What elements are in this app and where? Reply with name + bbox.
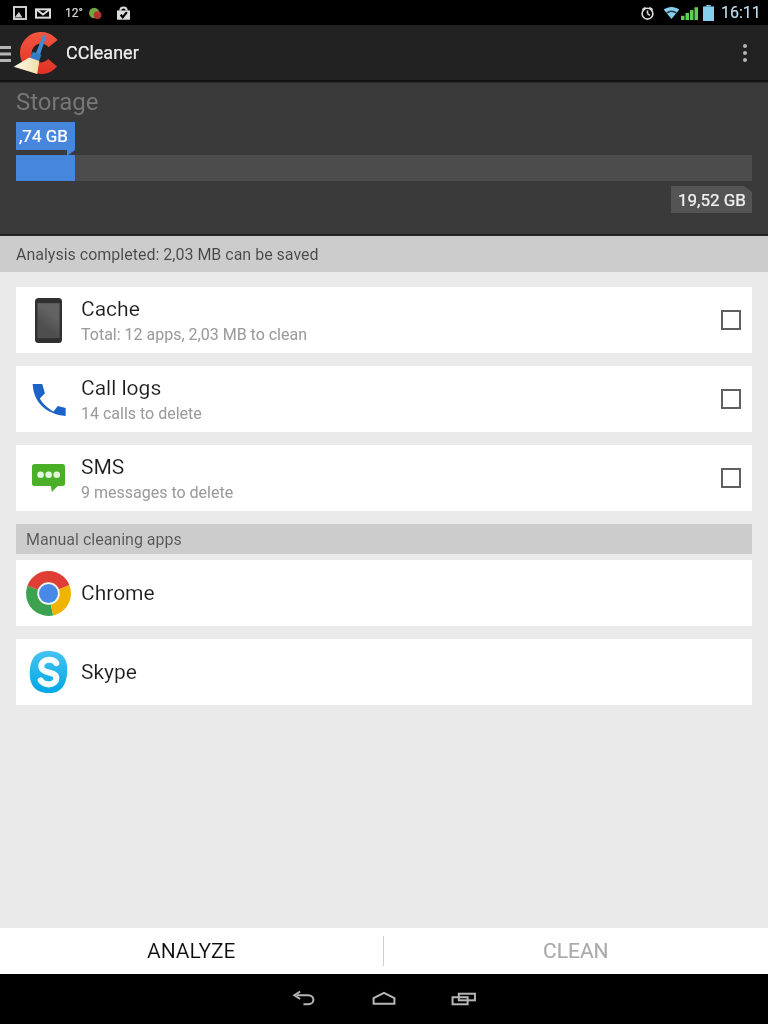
button[interactable]: Home <box>344 974 424 1024</box>
staticText: SMS <box>81 455 125 480</box>
staticText: Analysis completed: 2,03 MB can be saved <box>16 245 319 264</box>
button[interactable]: CLEAN <box>384 928 768 974</box>
button[interactable]: Chrome <box>16 560 752 626</box>
button[interactable]: Open navigation drawer <box>0 25 14 80</box>
staticText: 9 messages to delete <box>81 483 234 502</box>
button[interactable]: Skype <box>16 639 752 705</box>
staticText: ,74 GB <box>19 126 68 146</box>
button[interactable]: Call logs <box>16 366 752 432</box>
button[interactable]: Recent apps <box>424 974 504 1024</box>
button[interactable]: Select SMS <box>710 445 752 511</box>
staticText: Manual cleaning apps <box>26 530 182 549</box>
button[interactable]: More options <box>722 25 768 80</box>
button[interactable]: Select Call logs <box>710 366 752 432</box>
button[interactable]: Select Cache <box>710 287 752 353</box>
button[interactable]: SMS <box>16 445 752 511</box>
staticText: ANALYZE <box>147 939 236 964</box>
button[interactable]: Cache <box>16 287 752 353</box>
staticText: 12° <box>65 6 83 20</box>
staticText: Chrome <box>81 581 155 606</box>
staticText: 14 calls to delete <box>81 404 202 423</box>
staticText: 19,52 GB <box>678 190 746 210</box>
staticText: Cache <box>81 297 140 322</box>
staticText: Skype <box>81 660 137 685</box>
button[interactable]: Back <box>264 974 344 1024</box>
staticText: Storage <box>16 88 99 116</box>
staticText: Total: 12 apps, 2,03 MB to clean <box>81 325 308 344</box>
staticText: CCleaner <box>66 42 139 63</box>
staticText: 16:11 <box>721 3 761 22</box>
staticText: Call logs <box>81 376 162 401</box>
button[interactable]: ANALYZE <box>0 928 383 974</box>
staticText: CLEAN <box>543 939 609 964</box>
